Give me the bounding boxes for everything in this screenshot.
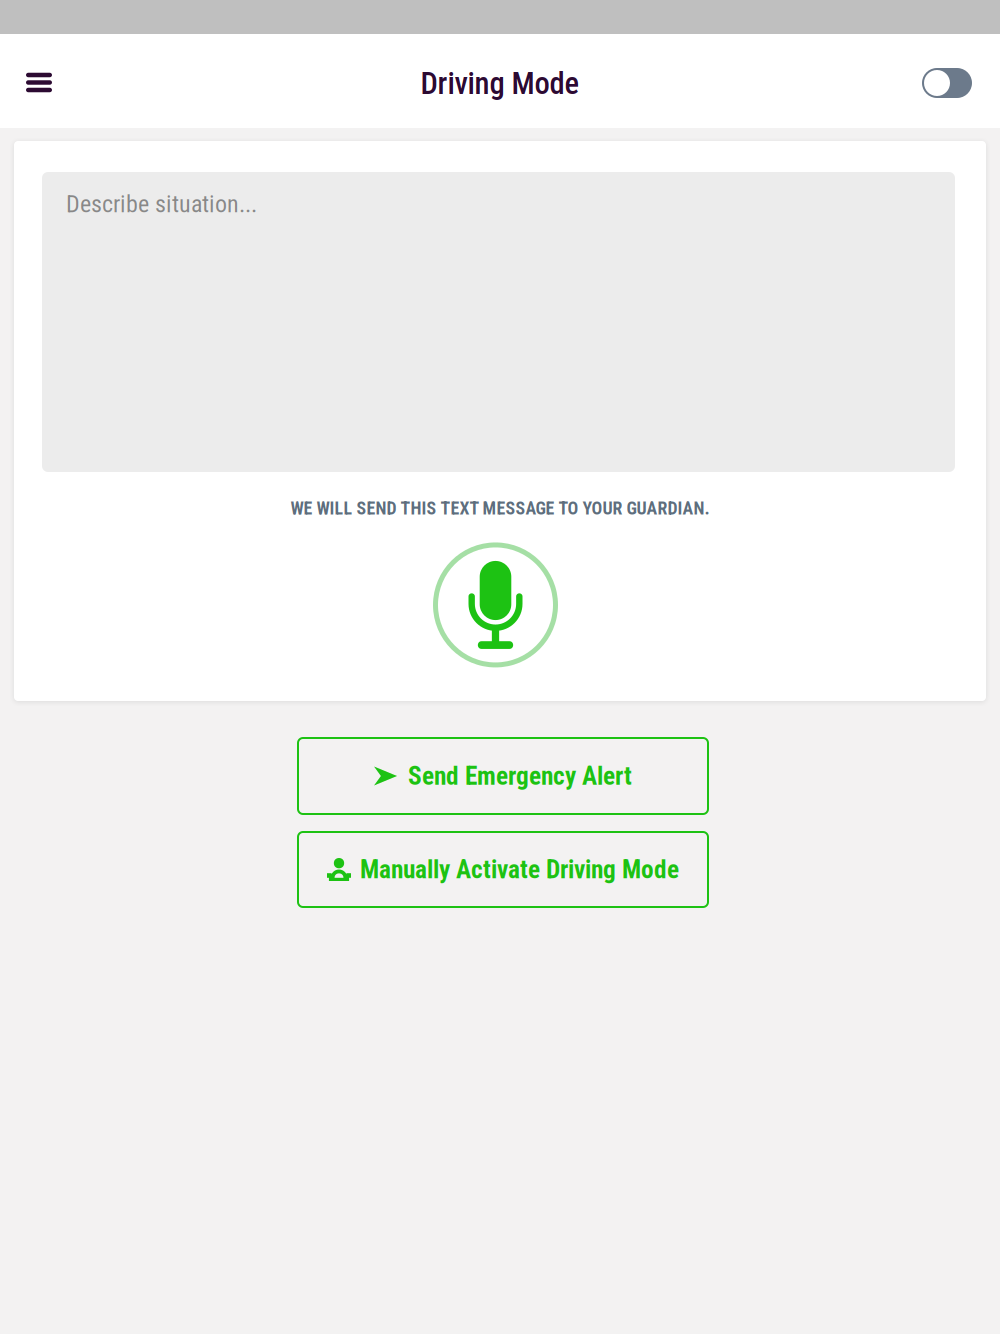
- button[interactable]: Menu: [0, 34, 78, 128]
- staticText: Describe situation...: [66, 190, 257, 218]
- staticText: WE WILL SEND THIS TEXT MESSAGE TO YOUR G…: [290, 498, 709, 519]
- staticText: Driving Mode: [420, 65, 579, 101]
- staticText: Manually Activate Driving Mode: [360, 855, 679, 884]
- staticText: Send Emergency Alert: [408, 761, 632, 791]
- button[interactable]: Record voice message: [432, 542, 558, 668]
- button[interactable]: Send Emergency Alert: [292, 738, 708, 814]
- button[interactable]: Driving mode toggle: [896, 34, 1000, 128]
- button[interactable]: Manually Activate Driving Mode: [292, 832, 708, 907]
